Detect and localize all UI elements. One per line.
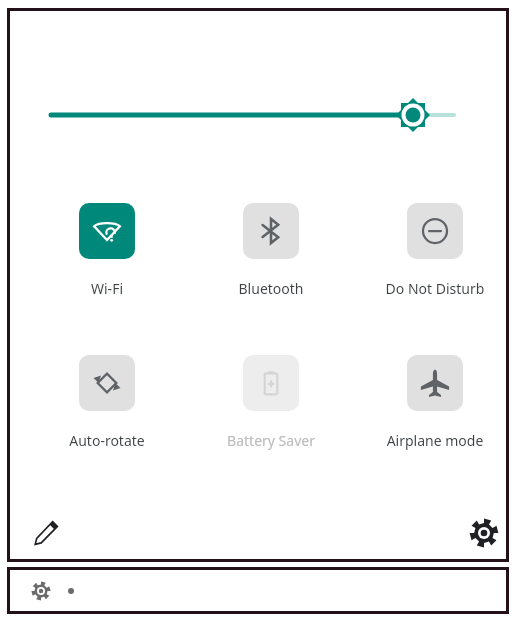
staticText: Auto-rotate: [42, 431, 172, 450]
staticText: Airplane mode: [370, 431, 500, 450]
staticText: Wi-Fi: [42, 279, 172, 298]
button[interactable]: Wi-Fi: [42, 197, 172, 298]
staticText: Bluetooth: [206, 279, 336, 298]
button[interactable]: Edit: [24, 511, 68, 555]
staticText: Do Not Disturb: [370, 279, 500, 298]
button[interactable]: Bluetooth: [206, 197, 336, 298]
button[interactable]: Settings: [462, 511, 506, 555]
button[interactable]: Brightness: [48, 93, 478, 137]
button[interactable]: Settings shortcut: [28, 578, 54, 604]
button[interactable]: Airplane mode: [370, 349, 500, 450]
button[interactable]: Auto-rotate: [42, 349, 172, 450]
staticText: Battery Saver: [206, 431, 336, 450]
button[interactable]: Do Not Disturb: [370, 197, 500, 298]
button[interactable]: Battery Saver: [206, 349, 336, 450]
